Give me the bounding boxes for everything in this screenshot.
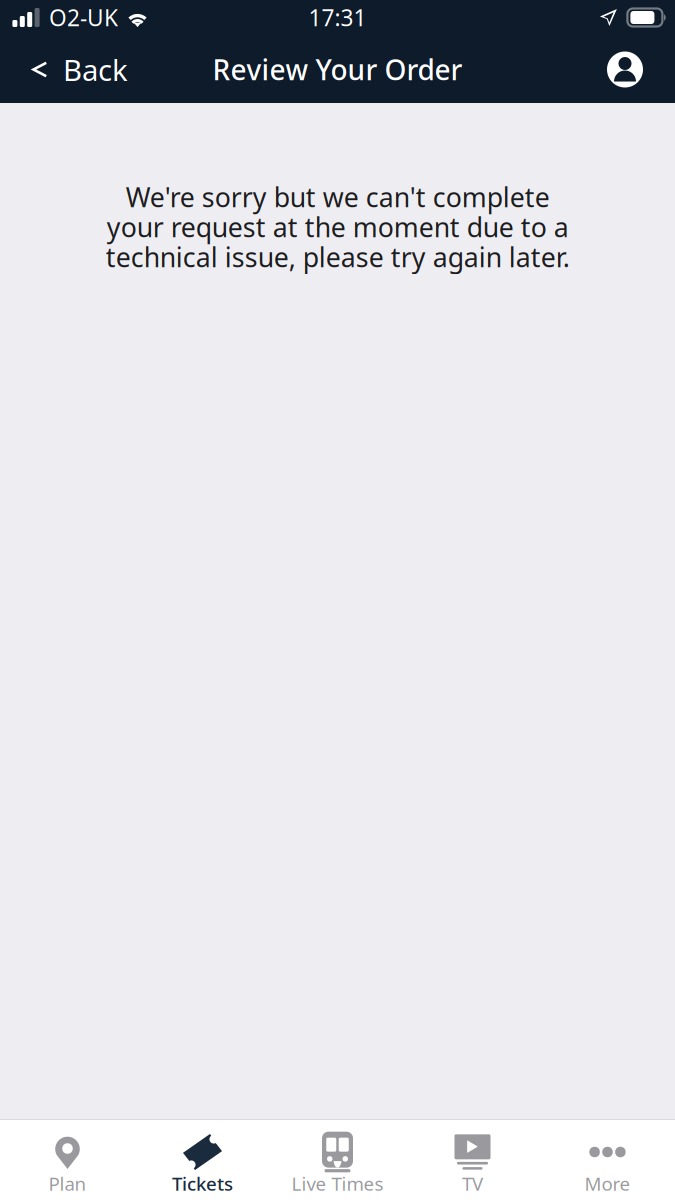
staticText: Live Times	[291, 1171, 383, 1196]
button[interactable]: Live Times	[270, 1120, 405, 1200]
staticText: Review Your Order	[212, 51, 462, 88]
button[interactable]: Tickets	[135, 1120, 270, 1200]
staticText: We're sorry but we can't complete	[125, 179, 549, 215]
staticText: your request at the moment due to a	[106, 209, 568, 245]
staticText: Back	[63, 50, 128, 89]
staticText: 17:31	[308, 2, 366, 32]
button[interactable]: Account	[591, 43, 675, 103]
button[interactable]: TV	[405, 1120, 540, 1200]
button[interactable]: Plan	[0, 1120, 135, 1200]
button[interactable]: Back	[0, 42, 144, 105]
staticText: technical issue, please try again later.	[105, 239, 569, 275]
staticText: More	[584, 1171, 630, 1196]
staticText: Plan	[48, 1171, 86, 1196]
staticText: TV	[462, 1171, 483, 1196]
staticText: Tickets	[172, 1171, 233, 1196]
staticText: O2-UK	[49, 2, 118, 32]
button[interactable]: More	[540, 1120, 675, 1200]
